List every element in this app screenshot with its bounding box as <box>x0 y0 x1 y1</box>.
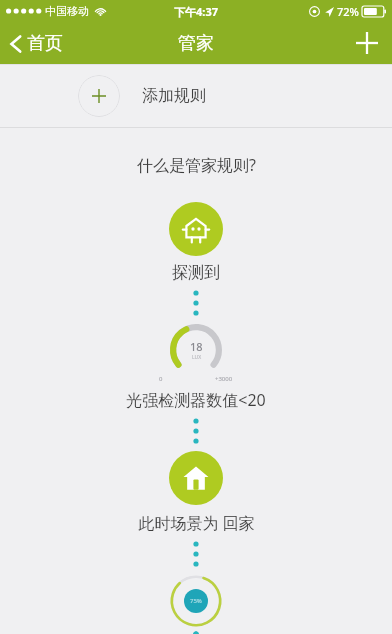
button[interactable]: Add <box>342 24 392 62</box>
staticText: LUX <box>192 354 202 361</box>
staticText: 首页 <box>27 32 63 55</box>
staticText: 18 <box>190 339 203 354</box>
staticText: 此时场景为 回家 <box>138 512 255 534</box>
staticText: +3000 <box>215 375 233 383</box>
button[interactable]: 添加规则 <box>0 65 392 127</box>
staticText: 光强检测器数值<20 <box>126 389 266 411</box>
staticText: 管家 <box>178 32 214 55</box>
staticText: 0 <box>159 375 163 383</box>
staticText: 什么是管家规则? <box>137 154 256 176</box>
button[interactable]: 首页 <box>0 26 77 61</box>
staticText: 探测到 <box>172 263 220 283</box>
staticText: 75% <box>190 597 202 605</box>
staticText: 中国移动 <box>45 4 89 18</box>
staticText: 下午4:37 <box>174 4 218 19</box>
staticText: 添加规则 <box>142 86 206 106</box>
staticText: 72% <box>337 4 359 19</box>
